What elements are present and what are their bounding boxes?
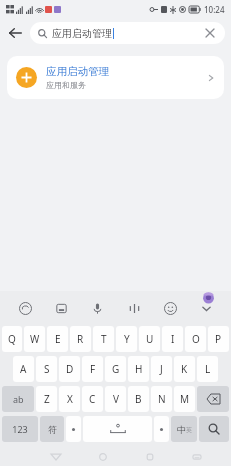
staticText: 符 [48, 424, 57, 435]
staticText: N [158, 392, 166, 406]
staticText: V [113, 392, 119, 406]
staticText: 10:24 [204, 4, 225, 15]
staticText: M [180, 392, 190, 406]
button[interactable]: 符 [40, 416, 64, 442]
button[interactable]: D [59, 356, 80, 382]
button[interactable]: 中 [171, 416, 197, 442]
button[interactable]: X [59, 386, 80, 412]
button[interactable]: T [93, 326, 114, 352]
button[interactable]: N [151, 386, 172, 412]
staticText: A [20, 362, 27, 376]
button[interactable]: ab [2, 386, 34, 412]
button[interactable]: Search [199, 416, 229, 442]
staticText: 中 [177, 424, 186, 435]
staticText: C [89, 392, 96, 406]
button[interactable]: Clipboard [50, 297, 72, 319]
button[interactable]: E [47, 326, 68, 352]
staticText: Z [44, 392, 50, 406]
staticText: 英 [186, 426, 192, 434]
button[interactable]: Punctuation [154, 416, 169, 442]
button[interactable]: Cursor move [123, 297, 145, 319]
button[interactable]: 123 [2, 416, 38, 442]
button[interactable]: Q [2, 326, 22, 352]
button[interactable]: Y [116, 326, 137, 352]
button[interactable]: Punctuation [66, 416, 81, 442]
button[interactable]: L [197, 356, 218, 382]
button[interactable]: P [208, 326, 229, 352]
staticText: P [215, 332, 222, 346]
staticText: T [101, 332, 107, 346]
staticText: E [55, 332, 61, 346]
staticText: W [30, 332, 40, 346]
staticText: G [112, 362, 120, 376]
staticText: O [192, 332, 200, 346]
button[interactable]: S [36, 356, 57, 382]
button[interactable]: Sticker [14, 297, 36, 319]
staticText: F [90, 362, 96, 376]
button[interactable]: 应用启动管理 [7, 56, 224, 99]
button[interactable]: J [151, 356, 172, 382]
button[interactable]: Back [43, 447, 69, 466]
staticText: D [66, 362, 74, 376]
staticText: X [67, 392, 73, 406]
staticText: ab [13, 393, 24, 405]
staticText: K [181, 362, 188, 376]
button[interactable]: Back [0, 18, 30, 48]
staticText: I [171, 332, 175, 346]
button[interactable]: Recents [137, 447, 163, 466]
staticText: 应用启动管理 [52, 27, 112, 40]
button[interactable]: Z [36, 386, 57, 412]
staticText: 123 [12, 423, 28, 435]
staticText: R [77, 332, 84, 346]
button[interactable]: A [13, 356, 34, 382]
button[interactable]: B [128, 386, 149, 412]
button[interactable]: 应用启动管理 [30, 22, 225, 44]
button[interactable]: G [105, 356, 126, 382]
button[interactable]: Home [90, 447, 116, 466]
staticText: J [160, 362, 163, 376]
button[interactable]: H [128, 356, 149, 382]
staticText: S [44, 362, 50, 376]
staticText: 应用和服务 [46, 80, 86, 90]
staticText: 应用启动管理 [46, 65, 109, 78]
staticText: L [205, 362, 211, 376]
staticText: U [146, 332, 154, 346]
staticText: Y [124, 332, 130, 346]
staticText: Q [8, 332, 16, 346]
button[interactable]: Clear [203, 26, 217, 40]
button[interactable]: W [24, 326, 45, 352]
button[interactable]: Emoji [159, 297, 181, 319]
button[interactable]: C [82, 386, 103, 412]
button[interactable]: F [82, 356, 103, 382]
button[interactable]: M [174, 386, 195, 412]
button[interactable]: Voice input [86, 297, 108, 319]
button[interactable]: Delete [197, 386, 229, 412]
button[interactable]: Hide keyboard [195, 297, 217, 319]
button[interactable]: R [70, 326, 91, 352]
button[interactable]: Space [83, 416, 152, 442]
button[interactable]: K [174, 356, 195, 382]
button[interactable]: V [105, 386, 126, 412]
button[interactable]: Keyboard [184, 447, 210, 466]
button[interactable]: O [185, 326, 206, 352]
button[interactable]: U [139, 326, 160, 352]
staticText: B [135, 392, 142, 406]
staticText: H [135, 362, 143, 376]
button[interactable]: I [162, 326, 183, 352]
